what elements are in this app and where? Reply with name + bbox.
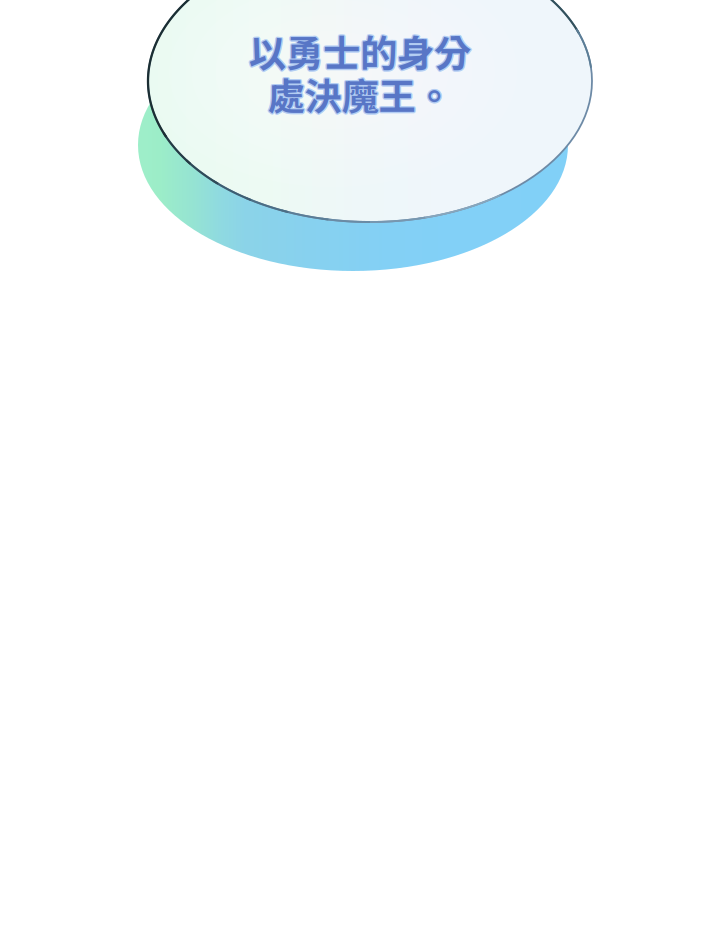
staticText: 處決魔王。 xyxy=(269,67,454,121)
staticText: 處決魔王。 xyxy=(266,66,451,120)
staticText: 處決魔王。 xyxy=(267,67,452,121)
staticText: 以勇士的身分 xyxy=(249,23,471,77)
staticText: 以勇士的身分 xyxy=(250,23,472,77)
staticText: 處決魔王。 xyxy=(267,66,452,120)
staticText: 以勇士的身分 xyxy=(249,25,471,79)
staticText: 以勇士的身分 xyxy=(250,24,472,78)
staticText: 處決魔王。 xyxy=(268,66,453,120)
staticText: 以勇士的身分 xyxy=(249,24,471,78)
staticText: 以勇士的身分 xyxy=(248,24,470,78)
staticText: 以勇士的身分 xyxy=(248,25,470,79)
staticText: 處決魔王。 xyxy=(268,68,453,122)
staticText: 以勇士的身分 xyxy=(248,23,470,77)
staticText: 以勇士的身分 xyxy=(250,25,472,79)
staticText: 處決魔王。 xyxy=(266,67,451,121)
staticText: 處決魔王。 xyxy=(267,68,452,123)
staticText: 處決魔王。 xyxy=(266,68,451,122)
